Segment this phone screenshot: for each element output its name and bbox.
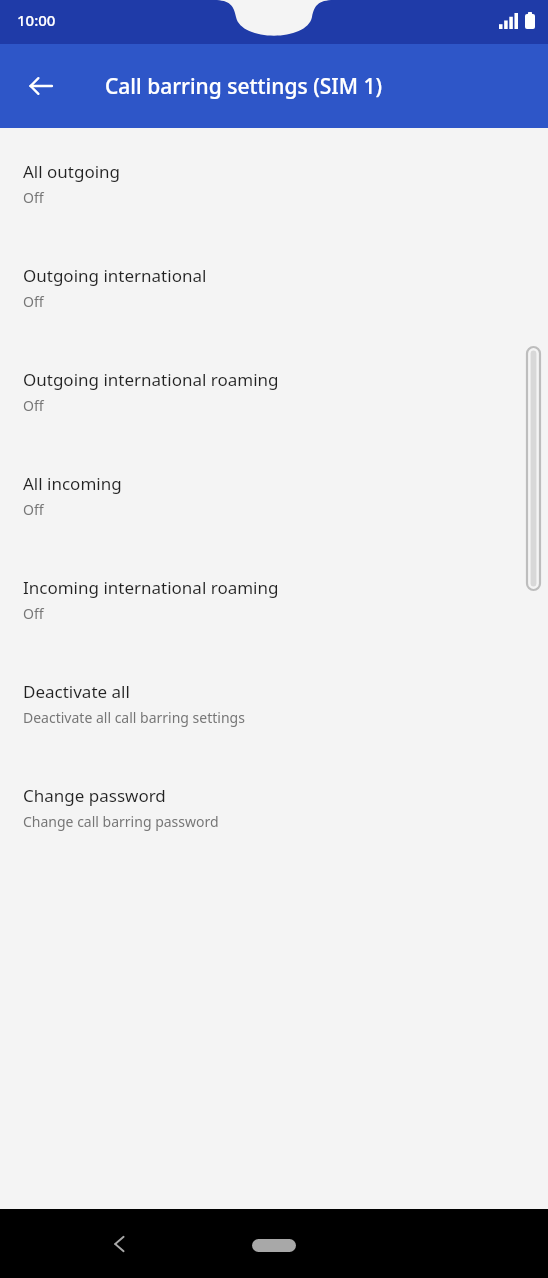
button[interactable]: Change password bbox=[0, 768, 548, 872]
staticText: All incoming bbox=[23, 472, 122, 495]
staticText: Deactivate all bbox=[23, 680, 130, 703]
staticText: 10:00 bbox=[17, 10, 56, 30]
staticText: Outgoing international roaming bbox=[23, 368, 279, 391]
button[interactable]: Back bbox=[96, 1220, 144, 1268]
button[interactable]: Incoming international roaming bbox=[0, 560, 548, 664]
staticText: Off bbox=[23, 292, 44, 311]
staticText: Call barring settings (SIM 1) bbox=[105, 72, 382, 101]
button[interactable]: All incoming bbox=[0, 456, 548, 560]
button[interactable]: Home bbox=[242, 1230, 306, 1260]
staticText: All outgoing bbox=[23, 160, 121, 183]
staticText: Deactivate all call barring settings bbox=[23, 708, 245, 727]
button[interactable]: Back bbox=[13, 58, 69, 114]
staticText: Off bbox=[23, 188, 44, 207]
button[interactable]: Deactivate all bbox=[0, 664, 548, 768]
staticText: Change password bbox=[23, 784, 166, 807]
staticText: Incoming international roaming bbox=[23, 576, 279, 599]
staticText: Change call barring password bbox=[23, 812, 219, 831]
button[interactable]: Outgoing international roaming bbox=[0, 352, 548, 456]
staticText: Outgoing international bbox=[23, 264, 207, 287]
staticText: Off bbox=[23, 396, 44, 415]
button[interactable]: Outgoing international bbox=[0, 248, 548, 352]
staticText: Off bbox=[23, 604, 44, 623]
staticText: Off bbox=[23, 500, 44, 519]
button[interactable]: All outgoing bbox=[0, 144, 548, 248]
